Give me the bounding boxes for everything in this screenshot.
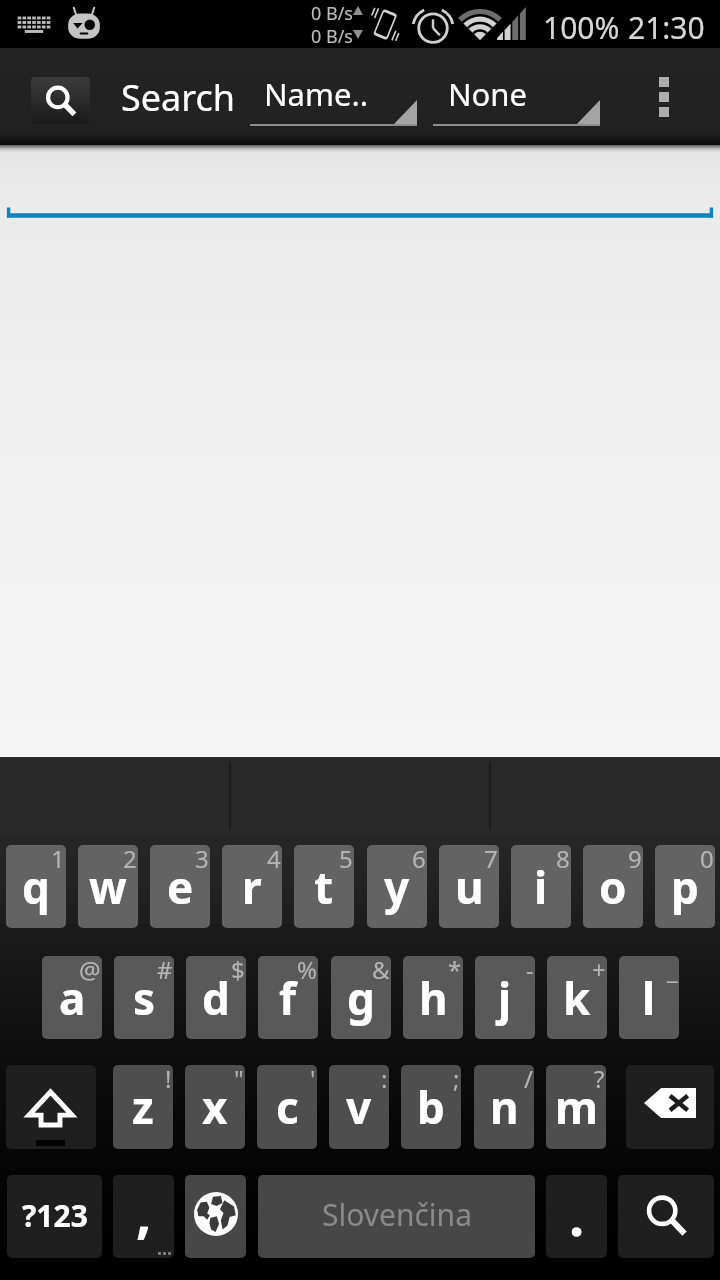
- staticText: n: [490, 1077, 519, 1137]
- button[interactable]: More options: [630, 48, 698, 145]
- button[interactable]: 0: [655, 845, 715, 928]
- button[interactable]: ;: [401, 1065, 461, 1149]
- button[interactable]: 3: [150, 845, 210, 928]
- staticText: h: [419, 968, 448, 1028]
- staticText: c: [276, 1077, 299, 1137]
- staticText: 0 B/s: [311, 1, 353, 26]
- staticText: f: [279, 968, 297, 1028]
- button[interactable]: ': [257, 1065, 317, 1149]
- staticText: e: [167, 857, 194, 917]
- staticText: -: [526, 956, 534, 986]
- button[interactable]: Search: [618, 1175, 714, 1258]
- button[interactable]: 5: [294, 845, 354, 928]
- button[interactable]: 7: [439, 845, 499, 928]
- button[interactable]: 8: [511, 845, 571, 928]
- staticText: x: [202, 1077, 228, 1137]
- staticText: 1: [51, 845, 65, 875]
- button[interactable]: %: [258, 956, 318, 1039]
- button[interactable]: 4: [222, 845, 282, 928]
- staticText: t: [314, 857, 334, 917]
- staticText: 2: [123, 845, 137, 875]
- button[interactable]: _: [619, 956, 679, 1039]
- button[interactable]: Shift: [6, 1065, 96, 1149]
- staticText: $: [231, 956, 245, 986]
- staticText: i: [534, 857, 548, 917]
- staticText: u: [455, 857, 484, 917]
- staticText: Slovenčina: [322, 1194, 472, 1235]
- staticText: y: [384, 857, 410, 917]
- staticText: g: [347, 968, 375, 1028]
- button[interactable]: +: [547, 956, 607, 1039]
- staticText: 0 B/s: [311, 24, 353, 49]
- staticText: @: [79, 956, 101, 986]
- staticText: p: [671, 857, 699, 917]
- staticText: #: [157, 956, 173, 986]
- staticText: 0: [700, 845, 714, 875]
- button[interactable]: ?123: [7, 1175, 102, 1258]
- staticText: /: [524, 1065, 533, 1095]
- button[interactable]: $: [186, 956, 246, 1039]
- button[interactable]: ": [185, 1065, 245, 1149]
- staticText: v: [346, 1077, 372, 1137]
- button[interactable]: Space: [258, 1175, 535, 1258]
- staticText: 9: [628, 845, 642, 875]
- staticText: d: [202, 968, 230, 1028]
- staticText: 5: [339, 845, 353, 875]
- button[interactable]: :: [329, 1065, 389, 1149]
- staticText: &: [372, 956, 390, 986]
- staticText: ?: [594, 1065, 605, 1095]
- button[interactable]: 2: [78, 845, 138, 928]
- button[interactable]: .: [546, 1175, 607, 1258]
- staticText: ': [310, 1065, 316, 1095]
- button[interactable]: &: [331, 956, 391, 1039]
- staticText: _: [667, 956, 678, 986]
- staticText: a: [59, 968, 86, 1028]
- staticText: :: [381, 1065, 388, 1095]
- staticText: w: [89, 857, 127, 917]
- staticText: *: [448, 956, 462, 986]
- staticText: r: [242, 857, 262, 917]
- staticText: ?123: [22, 1195, 88, 1236]
- button[interactable]: #: [114, 956, 174, 1039]
- staticText: b: [417, 1077, 445, 1137]
- staticText: ,: [136, 1175, 152, 1249]
- staticText: None: [448, 73, 527, 115]
- button[interactable]: ?: [546, 1065, 606, 1149]
- staticText: j: [498, 968, 512, 1028]
- button[interactable]: Name..: [250, 62, 417, 132]
- staticText: !: [165, 1065, 172, 1095]
- staticText: 8: [556, 845, 570, 875]
- staticText: o: [599, 857, 627, 917]
- staticText: .: [569, 1178, 585, 1252]
- button[interactable]: *: [403, 956, 463, 1039]
- staticText: 6: [412, 845, 426, 875]
- button[interactable]: 6: [367, 845, 427, 928]
- button[interactable]: /: [474, 1065, 534, 1149]
- staticText: l: [642, 968, 656, 1028]
- button[interactable]: Backspace: [626, 1065, 714, 1149]
- button[interactable]: 1: [6, 845, 66, 928]
- button[interactable]: Search: [31, 77, 90, 124]
- staticText: m: [555, 1077, 598, 1137]
- staticText: +: [592, 956, 606, 986]
- staticText: 3: [195, 845, 209, 875]
- staticText: 7: [484, 845, 498, 875]
- staticText: Name..: [264, 73, 369, 115]
- button[interactable]: !: [113, 1065, 173, 1149]
- button[interactable]: Change keyboard language: [185, 1175, 246, 1258]
- button[interactable]: None: [433, 62, 600, 132]
- staticText: s: [133, 968, 156, 1028]
- staticText: k: [563, 968, 591, 1028]
- button[interactable]: @: [42, 956, 102, 1039]
- staticText: %: [297, 956, 317, 986]
- button[interactable]: ,: [113, 1175, 174, 1258]
- staticText: 100%: [543, 7, 620, 48]
- staticText: ;: [453, 1065, 460, 1095]
- button[interactable]: -: [475, 956, 535, 1039]
- staticText: 4: [267, 845, 281, 875]
- staticText: 21:30: [628, 7, 705, 48]
- button[interactable]: 9: [583, 845, 643, 928]
- staticText: z: [132, 1077, 154, 1137]
- staticText: ": [234, 1065, 244, 1095]
- staticText: Search: [121, 73, 235, 122]
